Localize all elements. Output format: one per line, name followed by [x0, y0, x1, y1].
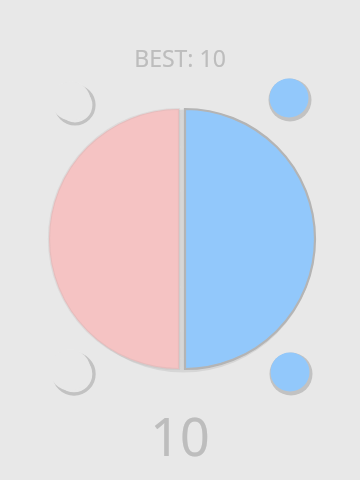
staticText: BEST: 10 — [134, 42, 226, 73]
button[interactable]: Tap to play — [0, 0, 360, 480]
staticText: 10 — [150, 400, 210, 471]
